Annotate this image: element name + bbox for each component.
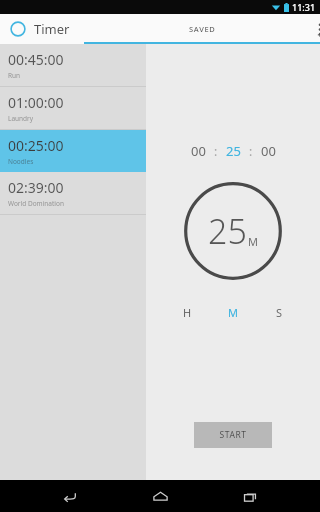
staticText: START — [219, 429, 247, 441]
staticText: 00:25:00 — [8, 136, 64, 155]
button[interactable]: SAVED — [84, 14, 320, 44]
staticText: S — [276, 305, 283, 320]
button[interactable]: 00:25:00 — [0, 130, 146, 172]
button[interactable]: S — [269, 302, 289, 322]
staticText: 02:39:00 — [8, 178, 64, 197]
staticText: 25 — [226, 142, 241, 160]
staticText: SAVED — [189, 24, 216, 34]
button[interactable]: Home — [140, 480, 180, 512]
staticText: M — [228, 305, 238, 320]
staticText: World Domination — [8, 199, 64, 208]
staticText: Timer — [34, 20, 70, 38]
button[interactable]: 25 — [224, 140, 243, 162]
staticText: 00 — [261, 142, 276, 160]
staticText: 25 — [208, 208, 247, 254]
staticText: 00 — [191, 142, 206, 160]
staticText: Laundry — [8, 114, 34, 123]
staticText: Noodles — [8, 157, 34, 166]
staticText: 11:31 — [292, 1, 316, 13]
button[interactable]: Back — [50, 480, 90, 512]
button[interactable]: H — [177, 302, 197, 322]
staticText: M — [248, 234, 258, 249]
staticText: 01:00:00 — [8, 93, 64, 112]
staticText: H — [183, 305, 192, 320]
button[interactable]: 01:00:00 — [0, 87, 146, 129]
button[interactable]: 02:39:00 — [0, 172, 146, 214]
staticText: : — [214, 143, 218, 159]
button[interactable]: M — [223, 302, 243, 322]
staticText: Run — [8, 71, 21, 80]
button[interactable]: 00:45:00 — [0, 44, 146, 86]
button[interactable]: 00 — [259, 140, 278, 162]
staticText: : — [249, 143, 253, 159]
button[interactable]: Recent apps — [230, 480, 270, 512]
button[interactable]: 00 — [189, 140, 208, 162]
staticText: 00:45:00 — [8, 50, 64, 69]
button[interactable]: START — [194, 422, 272, 448]
